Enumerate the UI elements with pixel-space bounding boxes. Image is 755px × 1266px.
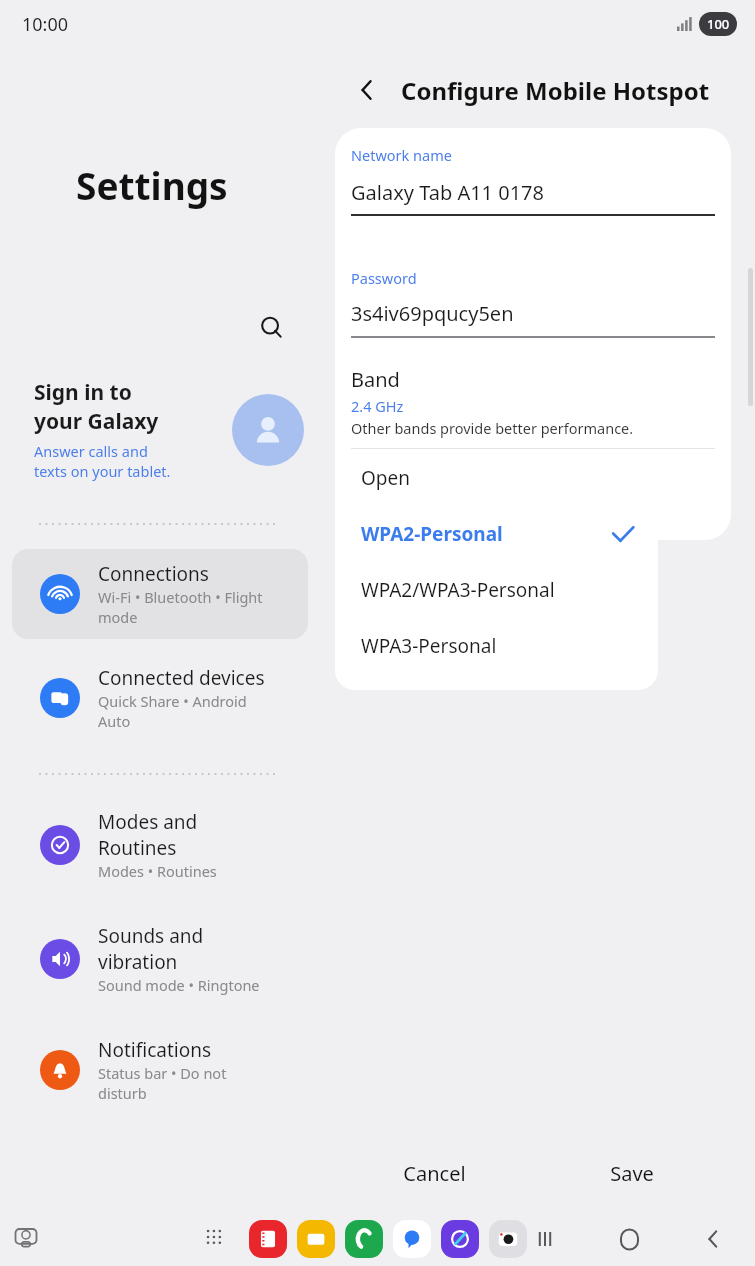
staticText: Status bar • Do not: [98, 1063, 227, 1083]
button[interactable]: App 5: [489, 1220, 527, 1258]
button[interactable]: Back: [689, 1215, 737, 1263]
staticText: Network name: [351, 145, 452, 165]
staticText: Notifications: [98, 1037, 212, 1063]
button[interactable]: App 1: [297, 1220, 335, 1258]
button[interactable]: Sign in to: [34, 378, 304, 481]
staticText: Cancel: [403, 1160, 466, 1187]
staticText: Settings: [76, 160, 320, 210]
button[interactable]: App 3: [393, 1220, 431, 1258]
button[interactable]: App 4: [441, 1220, 479, 1258]
staticText: Configure Mobile Hotspot: [401, 74, 710, 107]
staticText: WPA2/WPA3-Personal: [361, 577, 636, 603]
staticText: Routines: [98, 835, 177, 861]
button[interactable]: WPA2-Personal: [335, 506, 658, 562]
button[interactable]: App 0: [249, 1220, 287, 1258]
staticText: Answer calls and: [34, 441, 148, 461]
button[interactable]: App 2: [345, 1220, 383, 1258]
staticText: Connections: [98, 561, 209, 587]
staticText: 2.4 GHz: [351, 396, 404, 416]
staticText: mode: [98, 607, 138, 627]
staticText: Modes • Routines: [98, 861, 217, 881]
staticText: Wi-Fi • Bluetooth • Flight: [98, 587, 263, 607]
staticText: disturb: [98, 1083, 147, 1103]
button[interactable]: Search: [250, 306, 294, 350]
staticText: 10:00: [22, 12, 69, 37]
staticText: 3s4iv69pqucy5en: [351, 300, 514, 327]
staticText: Other bands provide better performance.: [351, 418, 634, 438]
button[interactable]: All apps: [196, 1219, 236, 1259]
staticText: Password: [351, 268, 417, 288]
button[interactable]: Sounds and: [12, 911, 308, 1007]
button[interactable]: Recents: [521, 1215, 569, 1263]
staticText: Connected devices: [98, 665, 265, 691]
button[interactable]: WPA2/WPA3-Personal: [335, 562, 658, 618]
staticText: Auto: [98, 711, 131, 731]
button[interactable]: Open: [335, 450, 658, 506]
button[interactable]: Connected devices: [12, 653, 308, 743]
button[interactable]: Cancel: [335, 1148, 533, 1199]
button[interactable]: Recent apps panel: [6, 1219, 46, 1259]
staticText: Sounds and: [98, 923, 204, 949]
staticText: 100: [707, 15, 730, 33]
staticText: Band: [351, 366, 400, 393]
staticText: WPA2-Personal: [361, 521, 610, 547]
staticText: Open: [361, 465, 636, 491]
staticText: Galaxy Tab A11 0178: [351, 179, 544, 206]
staticText: Modes and: [98, 809, 198, 835]
staticText: your Galaxy: [34, 407, 159, 436]
staticText: Sound mode • Ringtone: [98, 975, 260, 995]
button[interactable]: Modes and: [12, 797, 308, 893]
staticText: Sign in to: [34, 378, 132, 407]
button[interactable]: Connections: [12, 549, 308, 639]
button[interactable]: WPA3-Personal: [335, 618, 658, 674]
staticText: Quick Share • Android: [98, 691, 247, 711]
staticText: Save: [610, 1160, 654, 1187]
staticText: texts on your tablet.: [34, 461, 171, 481]
button[interactable]: Save: [533, 1148, 731, 1199]
button[interactable]: Back: [345, 68, 389, 112]
staticText: vibration: [98, 949, 178, 975]
button[interactable]: Notifications: [12, 1025, 308, 1115]
staticText: WPA3-Personal: [361, 633, 636, 659]
button[interactable]: Home: [605, 1215, 653, 1263]
